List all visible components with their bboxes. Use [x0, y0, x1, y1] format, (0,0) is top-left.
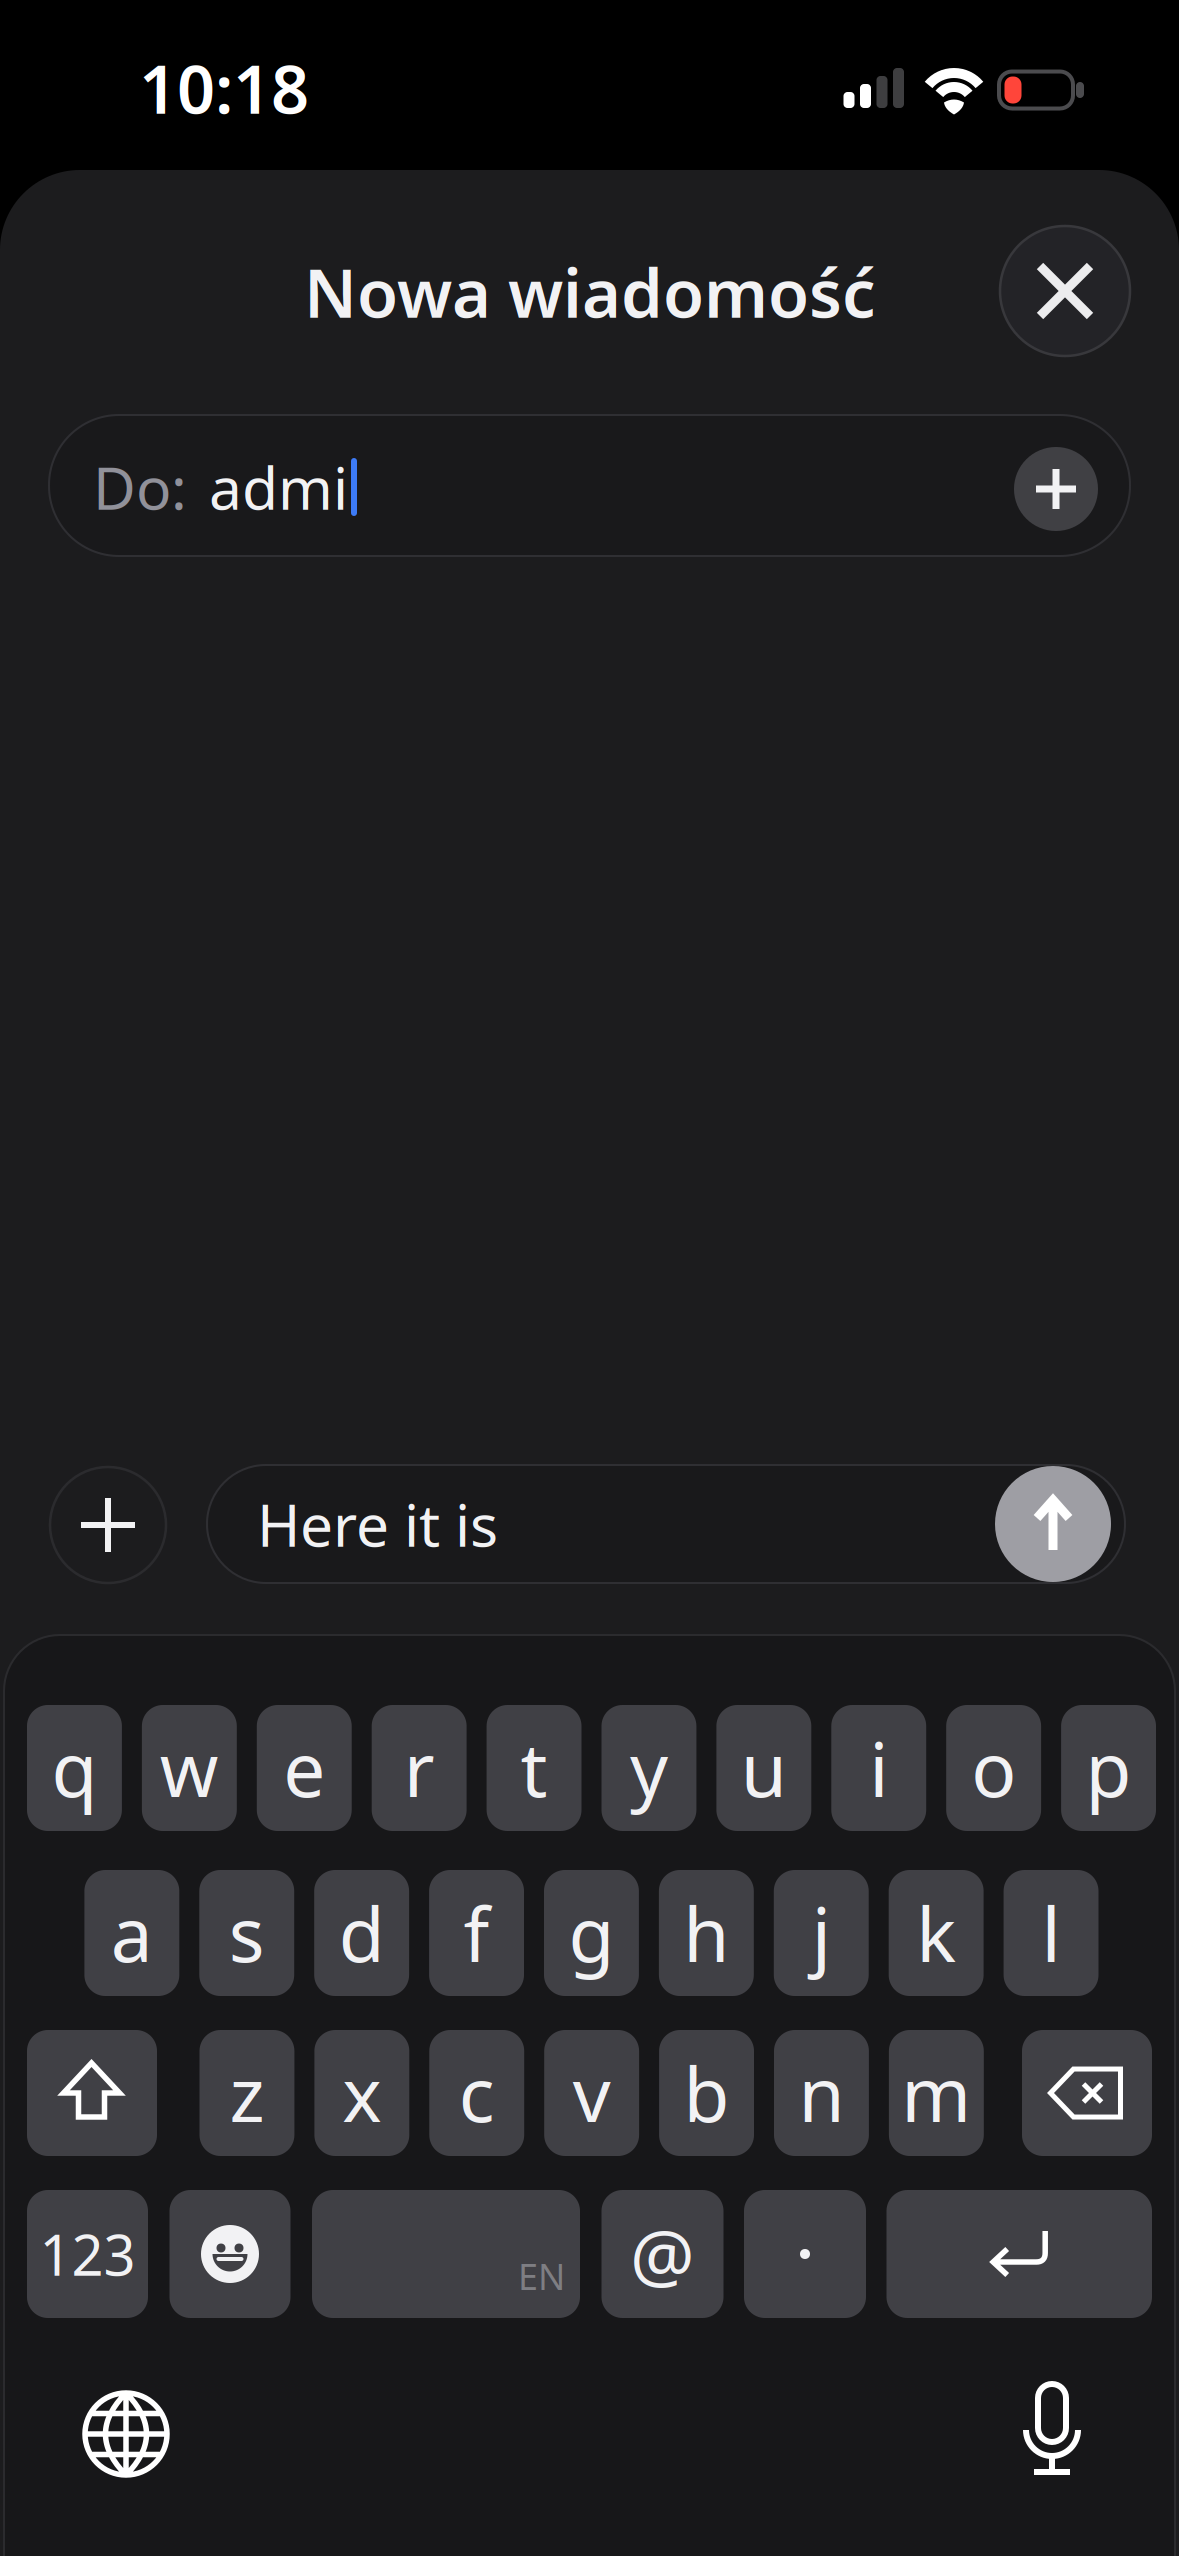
button[interactable]: q	[27, 1705, 122, 1831]
button[interactable]: k	[889, 1870, 984, 1996]
staticText: Do:	[93, 448, 187, 526]
staticText: a	[111, 1883, 153, 1983]
staticText: g	[568, 1883, 614, 1983]
staticText: l	[1041, 1883, 1060, 1983]
button[interactable]: c	[429, 2030, 524, 2156]
staticText: EN	[518, 2252, 565, 2300]
staticText: 10:18	[139, 44, 309, 132]
staticText: b	[684, 2043, 730, 2143]
staticText: s	[229, 1883, 265, 1983]
button[interactable]: Do:	[49, 415, 1130, 556]
button[interactable]	[886, 2190, 1152, 2318]
button[interactable]: m	[889, 2030, 984, 2156]
button[interactable]: y	[601, 1705, 696, 1831]
button[interactable]: s	[199, 1870, 294, 1996]
button[interactable]	[66, 2374, 186, 2494]
button[interactable]: t	[487, 1705, 581, 1831]
staticText: admi	[209, 448, 348, 526]
button[interactable]: p	[1061, 1705, 1156, 1831]
staticText: Here it is	[257, 1485, 498, 1563]
button[interactable]	[992, 2372, 1112, 2492]
button[interactable]: o	[946, 1705, 1041, 1831]
button[interactable]: a	[84, 1870, 179, 1996]
button[interactable]: f	[429, 1870, 524, 1996]
staticText: c	[459, 2043, 495, 2143]
staticText: t	[521, 1718, 548, 1818]
button[interactable]	[1022, 2030, 1152, 2156]
button[interactable]: r	[372, 1705, 467, 1831]
button[interactable]: EN	[312, 2190, 580, 2318]
button[interactable]	[995, 1466, 1111, 1582]
staticText: e	[283, 1718, 325, 1818]
staticText: d	[339, 1883, 385, 1983]
button[interactable]: 123	[27, 2190, 148, 2318]
button[interactable]: @	[601, 2190, 723, 2318]
button[interactable]: n	[774, 2030, 869, 2156]
button[interactable]	[27, 2030, 157, 2156]
button[interactable]	[50, 1467, 166, 1583]
button[interactable]: u	[716, 1705, 811, 1831]
button[interactable]: x	[314, 2030, 409, 2156]
button[interactable]	[1000, 226, 1130, 356]
button[interactable]: g	[544, 1870, 639, 1996]
button[interactable]	[744, 2190, 866, 2318]
button[interactable]: Here it is	[207, 1465, 1125, 1583]
button[interactable]: j	[774, 1870, 869, 1996]
staticText: n	[798, 2043, 844, 2143]
button[interactable]: v	[544, 2030, 639, 2156]
button[interactable]	[169, 2190, 290, 2318]
staticText: v	[573, 2043, 611, 2143]
staticText: q	[51, 1718, 97, 1818]
staticText: p	[1086, 1718, 1132, 1818]
button[interactable]	[1014, 447, 1098, 531]
button[interactable]: b	[659, 2030, 754, 2156]
staticText: y	[630, 1718, 668, 1818]
staticText: h	[683, 1883, 729, 1983]
button[interactable]: e	[257, 1705, 352, 1831]
button[interactable]: i	[831, 1705, 926, 1831]
staticText: 123	[39, 2217, 135, 2291]
staticText: z	[229, 2043, 264, 2143]
staticText: i	[869, 1718, 888, 1818]
staticText: f	[464, 1883, 490, 1983]
button[interactable]: z	[199, 2030, 294, 2156]
button[interactable]: l	[1004, 1870, 1098, 1996]
button[interactable]: d	[314, 1870, 409, 1996]
staticText: Nowa wiadomość	[304, 248, 875, 336]
staticText: o	[971, 1718, 1016, 1818]
staticText: j	[812, 1883, 831, 1983]
button[interactable]: w	[142, 1705, 237, 1831]
button[interactable]: h	[659, 1870, 754, 1996]
staticText: m	[901, 2043, 971, 2143]
staticText: x	[342, 2043, 381, 2143]
staticText: k	[916, 1883, 956, 1983]
staticText: r	[404, 1718, 435, 1818]
staticText: u	[741, 1718, 787, 1818]
staticText: w	[160, 1718, 219, 1818]
staticText: @	[630, 2206, 695, 2302]
